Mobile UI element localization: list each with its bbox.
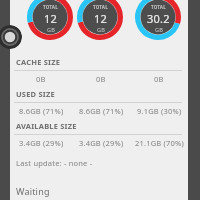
staticText: 0B <box>154 74 164 84</box>
button[interactable]: TOTAL <box>27 0 73 40</box>
staticText: AVAILABLE SIZE <box>16 121 77 131</box>
staticText: TOTAL <box>93 4 108 10</box>
staticText: CACHE SIZE <box>16 57 61 67</box>
staticText: 0B <box>96 74 106 84</box>
staticText: TOTAL <box>43 4 58 10</box>
staticText: 30.2 <box>147 11 170 26</box>
staticText: 21.1GB (70%) <box>135 138 184 148</box>
button[interactable]: TOTAL <box>135 0 181 40</box>
button[interactable]: Open navigation drawer <box>0 25 22 49</box>
staticText: 0B <box>36 74 46 84</box>
staticText: 3.4GB (29%) <box>19 138 64 148</box>
button[interactable]: USED SIZE <box>10 84 188 116</box>
button[interactable]: TOTAL <box>77 0 123 40</box>
button[interactable]: Last update: - none - <box>10 148 188 168</box>
button[interactable]: AVAILABLE SIZE <box>10 116 188 148</box>
staticText: 12 <box>94 11 107 26</box>
staticText: GB <box>155 26 163 33</box>
staticText: GB <box>97 26 105 33</box>
button[interactable]: CACHE SIZE <box>10 52 188 84</box>
staticText: USED SIZE <box>16 89 55 99</box>
staticText: 8.6GB (71%) <box>79 106 124 116</box>
staticText: 3.4GB (29%) <box>79 138 124 148</box>
staticText: Last update: - none - <box>16 158 93 168</box>
staticText: 8.6GB (71%) <box>19 106 64 116</box>
staticText: 12 <box>44 11 57 26</box>
staticText: Waiting <box>16 185 50 197</box>
staticText: 9.1GB (30%) <box>137 106 182 116</box>
staticText: TOTAL <box>151 4 166 10</box>
staticText: GB <box>47 26 55 33</box>
